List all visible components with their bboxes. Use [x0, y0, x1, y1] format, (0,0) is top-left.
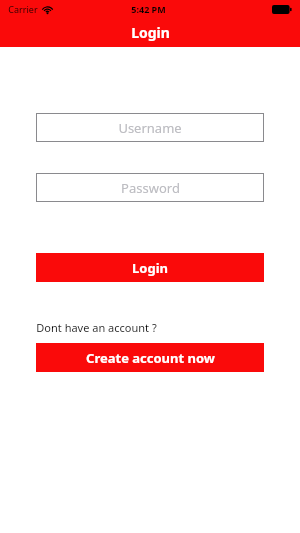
- button[interactable]: Login: [36, 253, 264, 282]
- staticText: Login: [131, 23, 170, 42]
- button[interactable]: Username: [36, 113, 264, 142]
- staticText: Username: [118, 119, 182, 137]
- staticText: Login: [132, 259, 168, 277]
- staticText: 5:42 PM: [131, 3, 166, 15]
- button[interactable]: Create account now: [36, 343, 264, 372]
- other: Battery full: [272, 5, 292, 14]
- staticText: Dont have an account ?: [36, 320, 157, 335]
- staticText: Carrier: [8, 3, 38, 15]
- button[interactable]: Dont have an account ?: [36, 320, 264, 335]
- button[interactable]: Password: [36, 173, 264, 202]
- staticText: Password: [121, 179, 180, 197]
- staticText: Create account now: [86, 349, 215, 367]
- other: Wi-Fi signal: [42, 5, 53, 14]
